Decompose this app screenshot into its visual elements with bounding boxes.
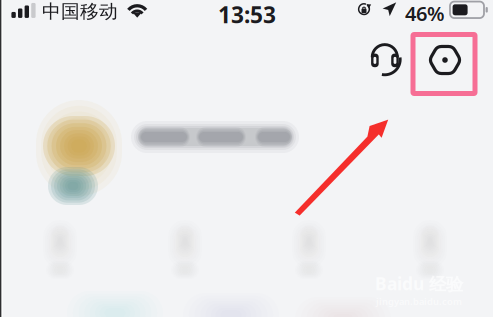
staticText: Baidu 经验	[375, 272, 463, 295]
staticText: 13:53	[218, 0, 276, 29]
button[interactable]: 设置	[423, 38, 467, 82]
button[interactable]: 客服	[363, 37, 407, 81]
staticText: 中国移动	[42, 0, 118, 23]
staticText: 46%	[405, 0, 445, 26]
